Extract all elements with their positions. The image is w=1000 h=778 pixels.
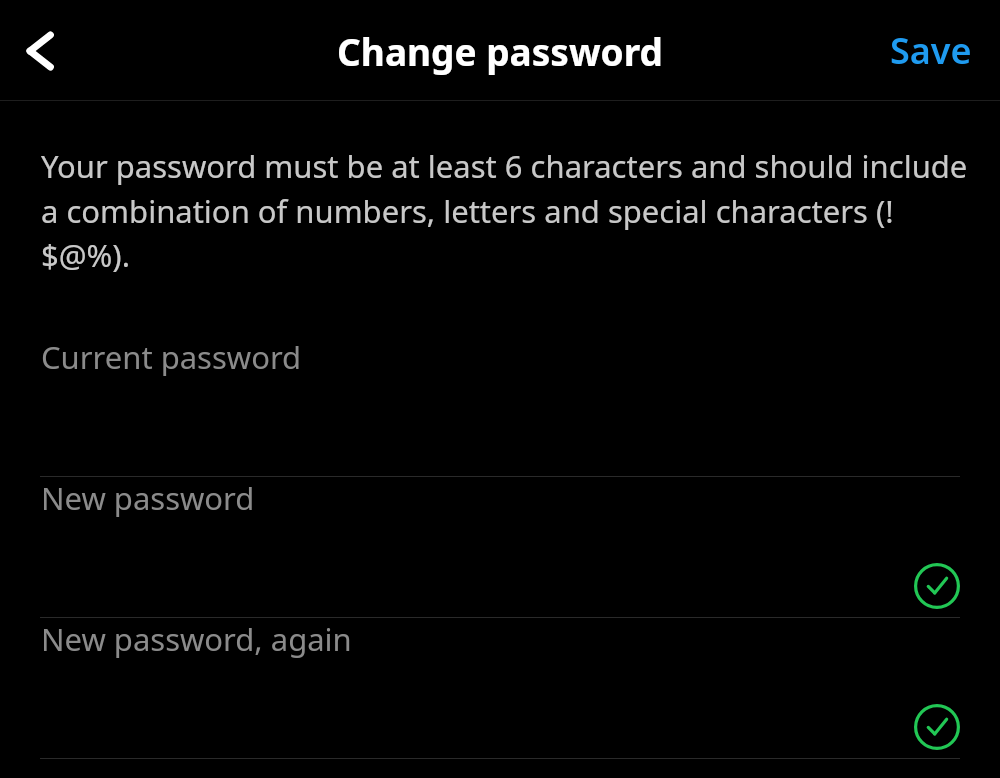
staticText: Change password [0,26,1000,76]
button[interactable]: Back [8,19,72,83]
other: Valid password [914,704,960,750]
staticText: Your password must be at least 6 charact… [41,145,970,276]
staticText: Save [890,26,972,75]
staticText: New password [41,477,255,519]
button[interactable]: Current password [0,336,1000,477]
button[interactable]: New password, again [0,618,1000,759]
button[interactable]: New password [0,477,1000,618]
button[interactable]: Save [884,18,978,83]
other: Valid password [914,563,960,609]
staticText: Current password [41,336,302,378]
staticText: New password, again [41,618,352,660]
